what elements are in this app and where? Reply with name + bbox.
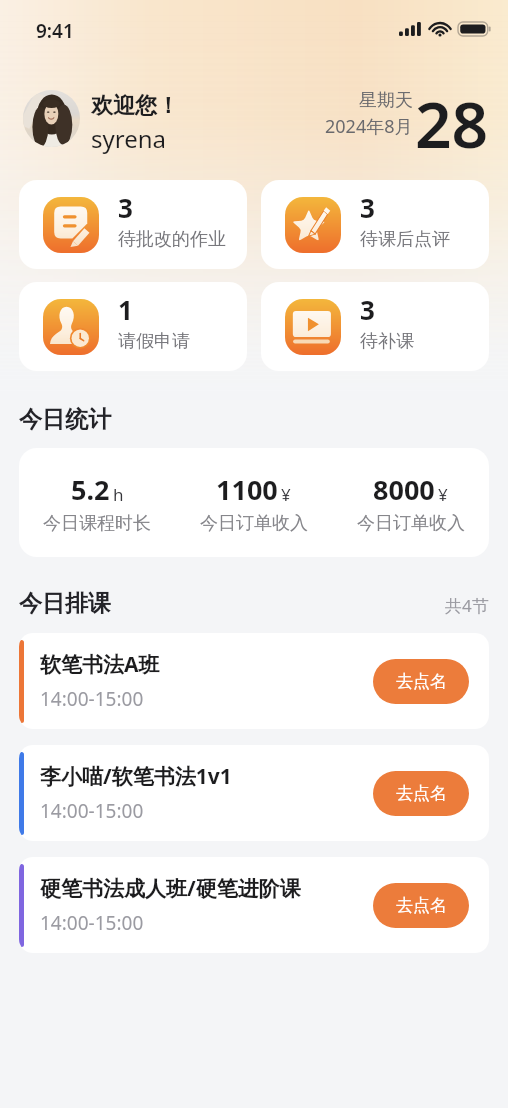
staticText: 李小喵/软笔书法1v1 [40,762,232,791]
staticText: 待补课 [360,330,414,353]
staticText: h [113,483,124,506]
button[interactable]: 去点名 [373,659,469,704]
button[interactable]: 3 [19,180,247,269]
button[interactable]: 软笔书法A班 [19,633,489,729]
staticText: 1 [118,292,133,327]
staticText: 硬笔书法成人班/硬笔进阶课 [40,874,301,903]
staticText: 星期天 [359,89,413,112]
staticText: 去点名 [396,783,447,804]
button[interactable]: 3 [261,180,489,269]
staticText: syrena [91,122,166,155]
button[interactable]: 硬笔书法成人班/硬笔进阶课 [19,857,489,953]
staticText: 欢迎您！ [91,92,179,120]
staticText: 待课后点评 [360,228,450,251]
staticText: 去点名 [396,895,447,916]
staticText: 28 [415,80,489,167]
staticText: ¥ [438,483,448,506]
button[interactable]: 去点名 [373,771,469,816]
staticText: 8000 [373,471,435,508]
staticText: 今日统计 [19,405,111,434]
staticText: 3 [118,190,133,225]
staticText: 9:41 [36,18,74,44]
staticText: 共4节 [445,594,489,617]
staticText: 去点名 [396,671,447,692]
staticText: 14:00-15:00 [40,686,144,712]
button[interactable]: 去点名 [373,883,469,928]
staticText: 今日课程时长 [43,512,151,535]
button[interactable]: 3 [261,282,489,371]
button[interactable]: 李小喵/软笔书法1v1 [19,745,489,841]
staticText: 待批改的作业 [118,228,226,251]
staticText: 今日订单收入 [200,512,308,535]
staticText: 软笔书法A班 [40,650,160,679]
staticText: 今日排课 [19,589,111,618]
staticText: 今日订单收入 [357,512,465,535]
staticText: ¥ [281,483,291,506]
staticText: 5.2 [71,471,110,508]
staticText: 14:00-15:00 [40,798,144,824]
staticText: 14:00-15:00 [40,910,144,936]
button[interactable]: 1 [19,282,247,371]
staticText: 3 [360,292,375,327]
staticText: 3 [360,190,375,225]
staticText: 请假申请 [118,330,190,353]
staticText: 1100 [216,471,278,508]
staticText: 2024年8月 [325,114,413,139]
